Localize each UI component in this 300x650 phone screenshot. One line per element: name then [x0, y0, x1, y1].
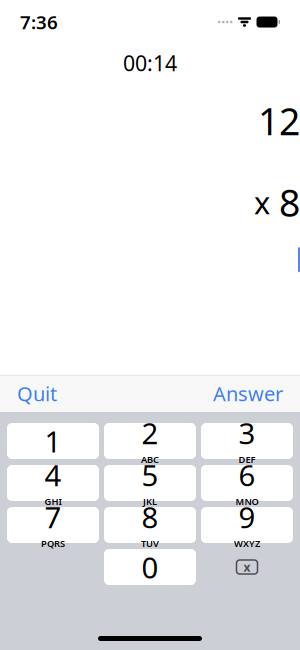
button[interactable]: Answer — [199, 371, 297, 416]
staticText: TUV — [141, 537, 159, 550]
staticText: PQRS — [41, 537, 65, 550]
staticText: 0 — [141, 547, 158, 586]
staticText: MNO — [235, 495, 258, 508]
staticText: ABC — [141, 453, 159, 466]
staticText: 3 — [238, 413, 255, 452]
staticText: GHI — [44, 495, 61, 508]
staticText: 7 — [44, 497, 61, 536]
button[interactable]: Quit — [3, 371, 71, 416]
button[interactable]: 9 — [201, 507, 293, 543]
staticText: 8 — [141, 497, 158, 536]
staticText: 4 — [44, 455, 61, 494]
button[interactable]: Delete — [201, 549, 293, 585]
button[interactable]: 8 — [104, 507, 196, 543]
staticText: 9 — [238, 497, 255, 536]
staticText: DEF — [238, 453, 255, 466]
button[interactable]: 5 — [104, 465, 196, 501]
staticText: 1 — [44, 421, 61, 460]
staticText: 5 — [141, 455, 158, 494]
staticText: JKL — [143, 495, 157, 508]
button[interactable]: 1 — [7, 423, 99, 459]
button[interactable]: 7 — [7, 507, 99, 543]
button[interactable]: 4 — [7, 465, 99, 501]
button[interactable]: 2 — [104, 423, 196, 459]
staticText: Answer — [213, 380, 283, 407]
staticText: Quit — [17, 380, 57, 407]
staticText: 6 — [238, 455, 255, 494]
button[interactable]: 0 — [104, 549, 196, 585]
button[interactable]: 3 — [201, 423, 293, 459]
staticText: x — [243, 559, 250, 575]
staticText: x — [254, 182, 270, 223]
staticText: 00:14 — [123, 49, 177, 77]
staticText: 2 — [141, 413, 158, 452]
button[interactable]: 6 — [201, 465, 293, 501]
staticText: 7:36 — [20, 10, 58, 34]
staticText: WXYZ — [234, 537, 260, 550]
staticText: 12 — [258, 96, 300, 146]
staticText: 8 — [279, 178, 300, 227]
